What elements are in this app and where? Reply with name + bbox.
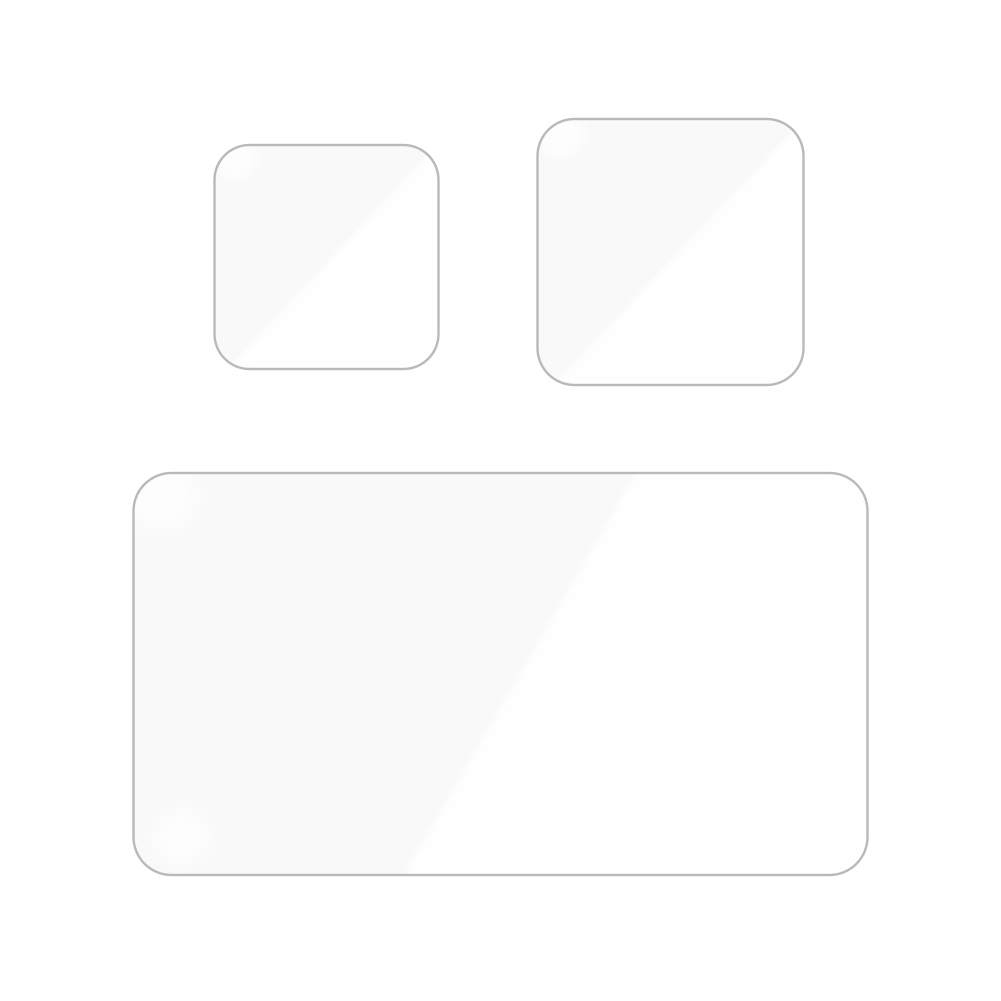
button[interactable]: Tablet screen protector — [133, 473, 867, 875]
button[interactable]: 45 mm screen protector — [537, 119, 803, 385]
button[interactable]: 41 mm screen protector — [214, 145, 438, 369]
